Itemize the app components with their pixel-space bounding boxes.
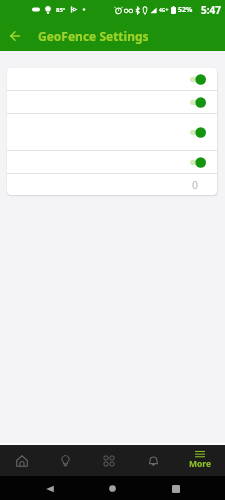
staticText: 4G+ [159,7,169,14]
button[interactable]: More [175,445,225,476]
staticText: 5:47 [201,3,221,17]
button[interactable] [7,68,217,90]
button[interactable]: Home [101,477,124,500]
staticText: 0 [192,178,199,192]
button[interactable]: Back [38,477,61,500]
button[interactable]: 0 [7,174,217,195]
button[interactable]: Ideas [43,445,87,476]
staticText: GeoFence Settings [38,28,149,44]
button[interactable] [7,114,217,150]
button[interactable]: Back [5,26,25,46]
button[interactable]: Apps [87,445,131,476]
button[interactable] [7,151,217,173]
button[interactable]: Alerts [131,445,175,476]
button[interactable]: Home [0,445,43,476]
button[interactable] [7,91,217,113]
button[interactable]: Recents [164,477,187,500]
staticText: More [189,458,212,470]
staticText: 85° [56,6,66,14]
staticText: 52% [178,5,193,15]
